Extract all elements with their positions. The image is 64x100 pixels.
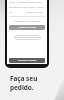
staticText: Informe seu CEP para calcular o frete e … <box>9 6 45 9</box>
button[interactable]: ENDEREÇO DE ENTREGA <box>17 1 42 4</box>
staticText: Faça seu <box>10 74 38 83</box>
staticText: CONTINUAR COMPRANDO <box>15 36 40 39</box>
staticText: CEP <box>9 11 13 14</box>
staticText: Entrega em 3 a 5 dias úteis <box>14 20 41 23</box>
button[interactable]: FINALIZAR PEDIDO <box>9 58 45 63</box>
staticText: ENDEREÇO DE ENTREGA <box>17 1 42 4</box>
staticText: voltar <box>9 1 15 4</box>
staticText: CALCULAR FRETE <box>19 26 36 29</box>
button[interactable]: CONTINUAR COMPRANDO <box>14 35 41 40</box>
button[interactable]: Não sei meu CEP <box>26 11 43 14</box>
staticText: pedido. <box>10 83 34 92</box>
staticText: FINALIZAR PEDIDO <box>18 59 37 62</box>
button[interactable]: CALCULAR FRETE <box>9 25 45 30</box>
staticText: Não sei meu CEP <box>26 11 43 14</box>
